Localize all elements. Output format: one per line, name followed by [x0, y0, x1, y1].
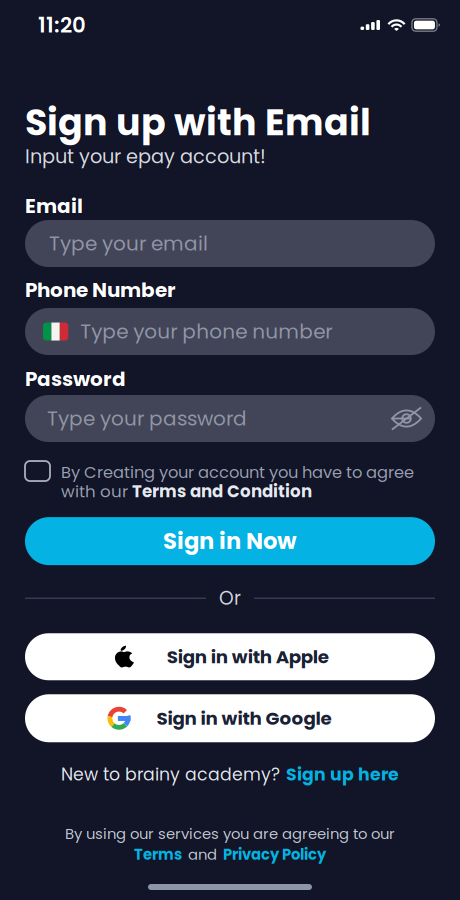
button[interactable]: Show password [391, 406, 422, 430]
staticText: Email [25, 192, 83, 220]
staticText: By using our services you are agreeing t… [65, 824, 395, 844]
button[interactable]: Terms [134, 844, 182, 865]
staticText: Terms and Condition [132, 480, 312, 503]
staticText: with our [61, 480, 128, 503]
button[interactable]: New to brainy academy? [25, 762, 435, 787]
staticText: New to brainy academy? [61, 762, 280, 787]
staticText: Sign in with Google [156, 705, 331, 731]
staticText: Sign in Now [163, 525, 297, 557]
staticText: and [188, 844, 217, 865]
staticText: Sign up with Email [25, 97, 371, 148]
staticText: Input your epay account! [25, 143, 266, 170]
staticText: Phone Number [25, 276, 176, 304]
staticText: Or [219, 585, 241, 611]
staticText: Privacy Policy [223, 844, 326, 865]
staticText: Type your phone number [80, 317, 332, 345]
button[interactable]: Agree to terms [25, 461, 50, 481]
button[interactable]: Sign in with Google [25, 694, 435, 742]
staticText: Type your email [49, 229, 208, 257]
staticText: Terms [134, 844, 182, 865]
button[interactable]: Sign in with Apple [25, 633, 435, 680]
staticText: Type your password [47, 404, 247, 432]
staticText: Sign up here [286, 762, 399, 787]
button[interactable]: Privacy Policy [223, 844, 326, 865]
staticText: By Creating your account you have to agr… [61, 461, 414, 484]
staticText: 11:20 [38, 10, 86, 40]
button[interactable]: Sign in Now [25, 517, 435, 565]
staticText: Sign in with Apple [167, 644, 329, 670]
staticText: Password [25, 365, 126, 393]
